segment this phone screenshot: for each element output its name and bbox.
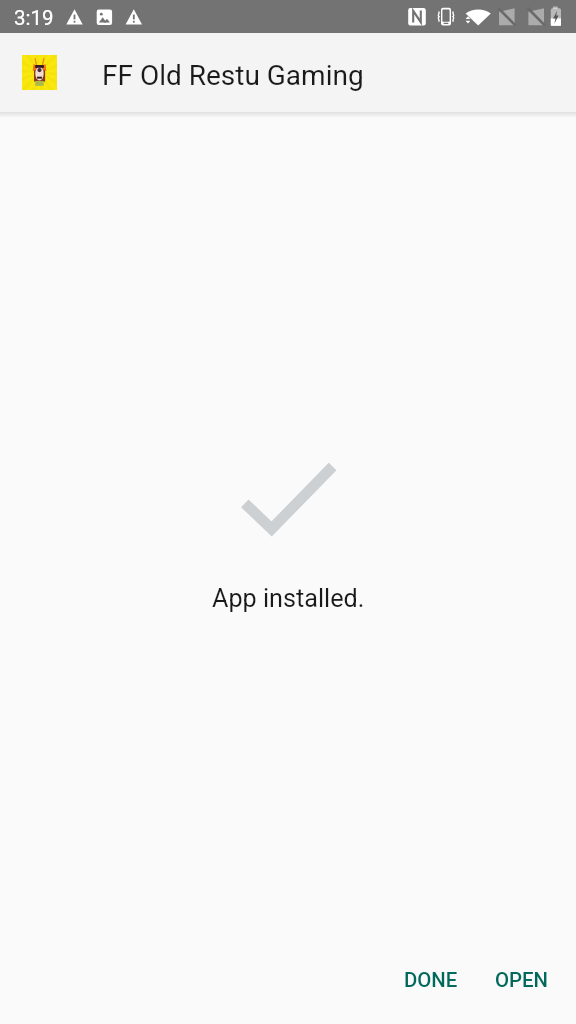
other: App icon <box>22 55 57 90</box>
staticText: DONE <box>404 968 458 992</box>
staticText: 3:19 <box>14 6 54 30</box>
staticText: App installed. <box>212 584 365 614</box>
staticText: FF Old Restu Gaming <box>102 59 364 92</box>
button[interactable]: OPEN <box>481 950 563 1010</box>
button[interactable]: DONE <box>390 950 472 1010</box>
staticText: OPEN <box>495 968 549 992</box>
